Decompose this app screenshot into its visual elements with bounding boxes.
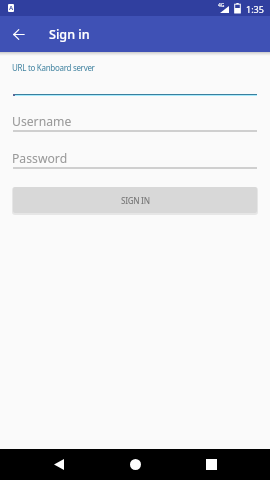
button[interactable]: Home — [120, 449, 150, 479]
button[interactable]: Username — [13, 112, 257, 132]
staticText: A — [9, 4, 14, 12]
button[interactable]: SIGN IN — [13, 187, 257, 213]
button[interactable]: Recent apps — [196, 449, 226, 479]
staticText: 1:35 — [246, 3, 264, 15]
button[interactable]: Navigate up — [6, 21, 32, 47]
staticText: Username — [12, 113, 72, 130]
staticText: Sign in — [49, 26, 90, 43]
staticText: Password — [12, 150, 68, 167]
staticText: 4G — [218, 2, 225, 9]
button[interactable]: Back — [44, 449, 74, 479]
button[interactable]: URL to Kanboard server — [13, 60, 257, 96]
button[interactable]: Password — [13, 149, 257, 169]
staticText: SIGN IN — [121, 195, 150, 206]
staticText: URL to Kanboard server — [12, 62, 95, 73]
